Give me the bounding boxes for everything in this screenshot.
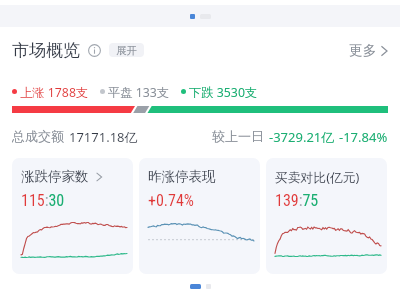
staticText: -3729.21亿 (269, 128, 335, 143)
button[interactable]: 展开 (109, 43, 144, 57)
button[interactable]: 昨涨停表现 (139, 158, 260, 274)
staticText: 较上一日 (212, 128, 264, 143)
staticText: 139:75 (275, 191, 319, 210)
staticText: 上涨 1788支 (20, 84, 89, 98)
staticText: 总成交额 (12, 128, 64, 143)
staticText: 平盘 133支 (108, 84, 170, 98)
staticText: 市场概览 (12, 40, 80, 61)
staticText: 昨涨停表现 (148, 168, 216, 185)
staticText: 17171.18亿 (69, 128, 138, 143)
staticText: 买卖对比(亿元) (275, 168, 360, 185)
staticText: 更多 (349, 42, 377, 59)
button[interactable]: 涨跌停家数 (12, 158, 133, 274)
staticText: 涨跌停家数 (21, 168, 89, 185)
staticText: 115:30 (21, 191, 65, 210)
staticText: -17.84% (339, 128, 388, 143)
staticText: 下跌 3530支 (189, 84, 258, 98)
button[interactable]: Info (87, 43, 101, 57)
button[interactable]: 买卖对比(亿元) (266, 158, 387, 274)
staticText: 展开 (116, 44, 137, 57)
staticText: +0.74% (148, 191, 194, 210)
button[interactable]: 更多 (349, 42, 388, 59)
